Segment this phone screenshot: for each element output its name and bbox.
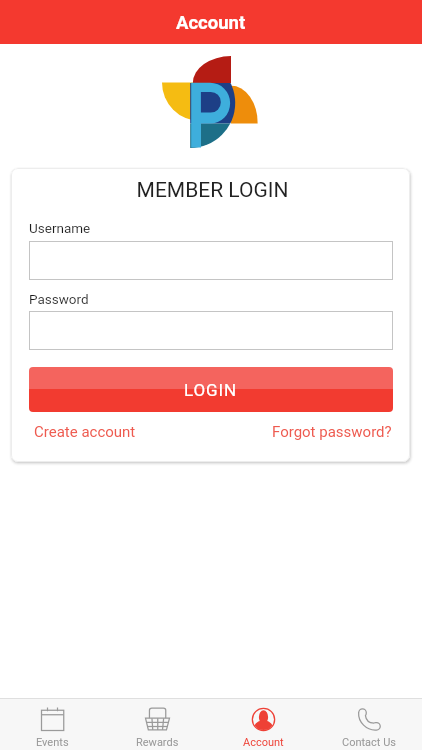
button[interactable]: Account xyxy=(210,699,316,750)
staticText: Password xyxy=(29,291,89,307)
button[interactable]: Rewards xyxy=(105,699,210,750)
staticText: Account xyxy=(176,12,246,34)
staticText: Create account xyxy=(34,423,136,441)
button[interactable] xyxy=(29,241,393,280)
button[interactable]: Create account xyxy=(29,419,141,445)
button[interactable]: LOGIN xyxy=(29,367,393,412)
staticText: Contact Us xyxy=(342,736,396,749)
button[interactable]: Forgot password? xyxy=(267,419,397,445)
staticText: Rewards xyxy=(136,736,179,749)
staticText: Events xyxy=(36,736,69,749)
staticText: Account xyxy=(243,736,284,749)
staticText: LOGIN xyxy=(184,380,238,400)
staticText: MEMBER LOGIN xyxy=(13,178,410,203)
button[interactable] xyxy=(29,311,393,350)
button[interactable]: Contact Us xyxy=(316,699,422,750)
staticText: Forgot password? xyxy=(272,423,392,441)
staticText: Username xyxy=(29,220,91,236)
button[interactable]: Events xyxy=(0,699,105,750)
